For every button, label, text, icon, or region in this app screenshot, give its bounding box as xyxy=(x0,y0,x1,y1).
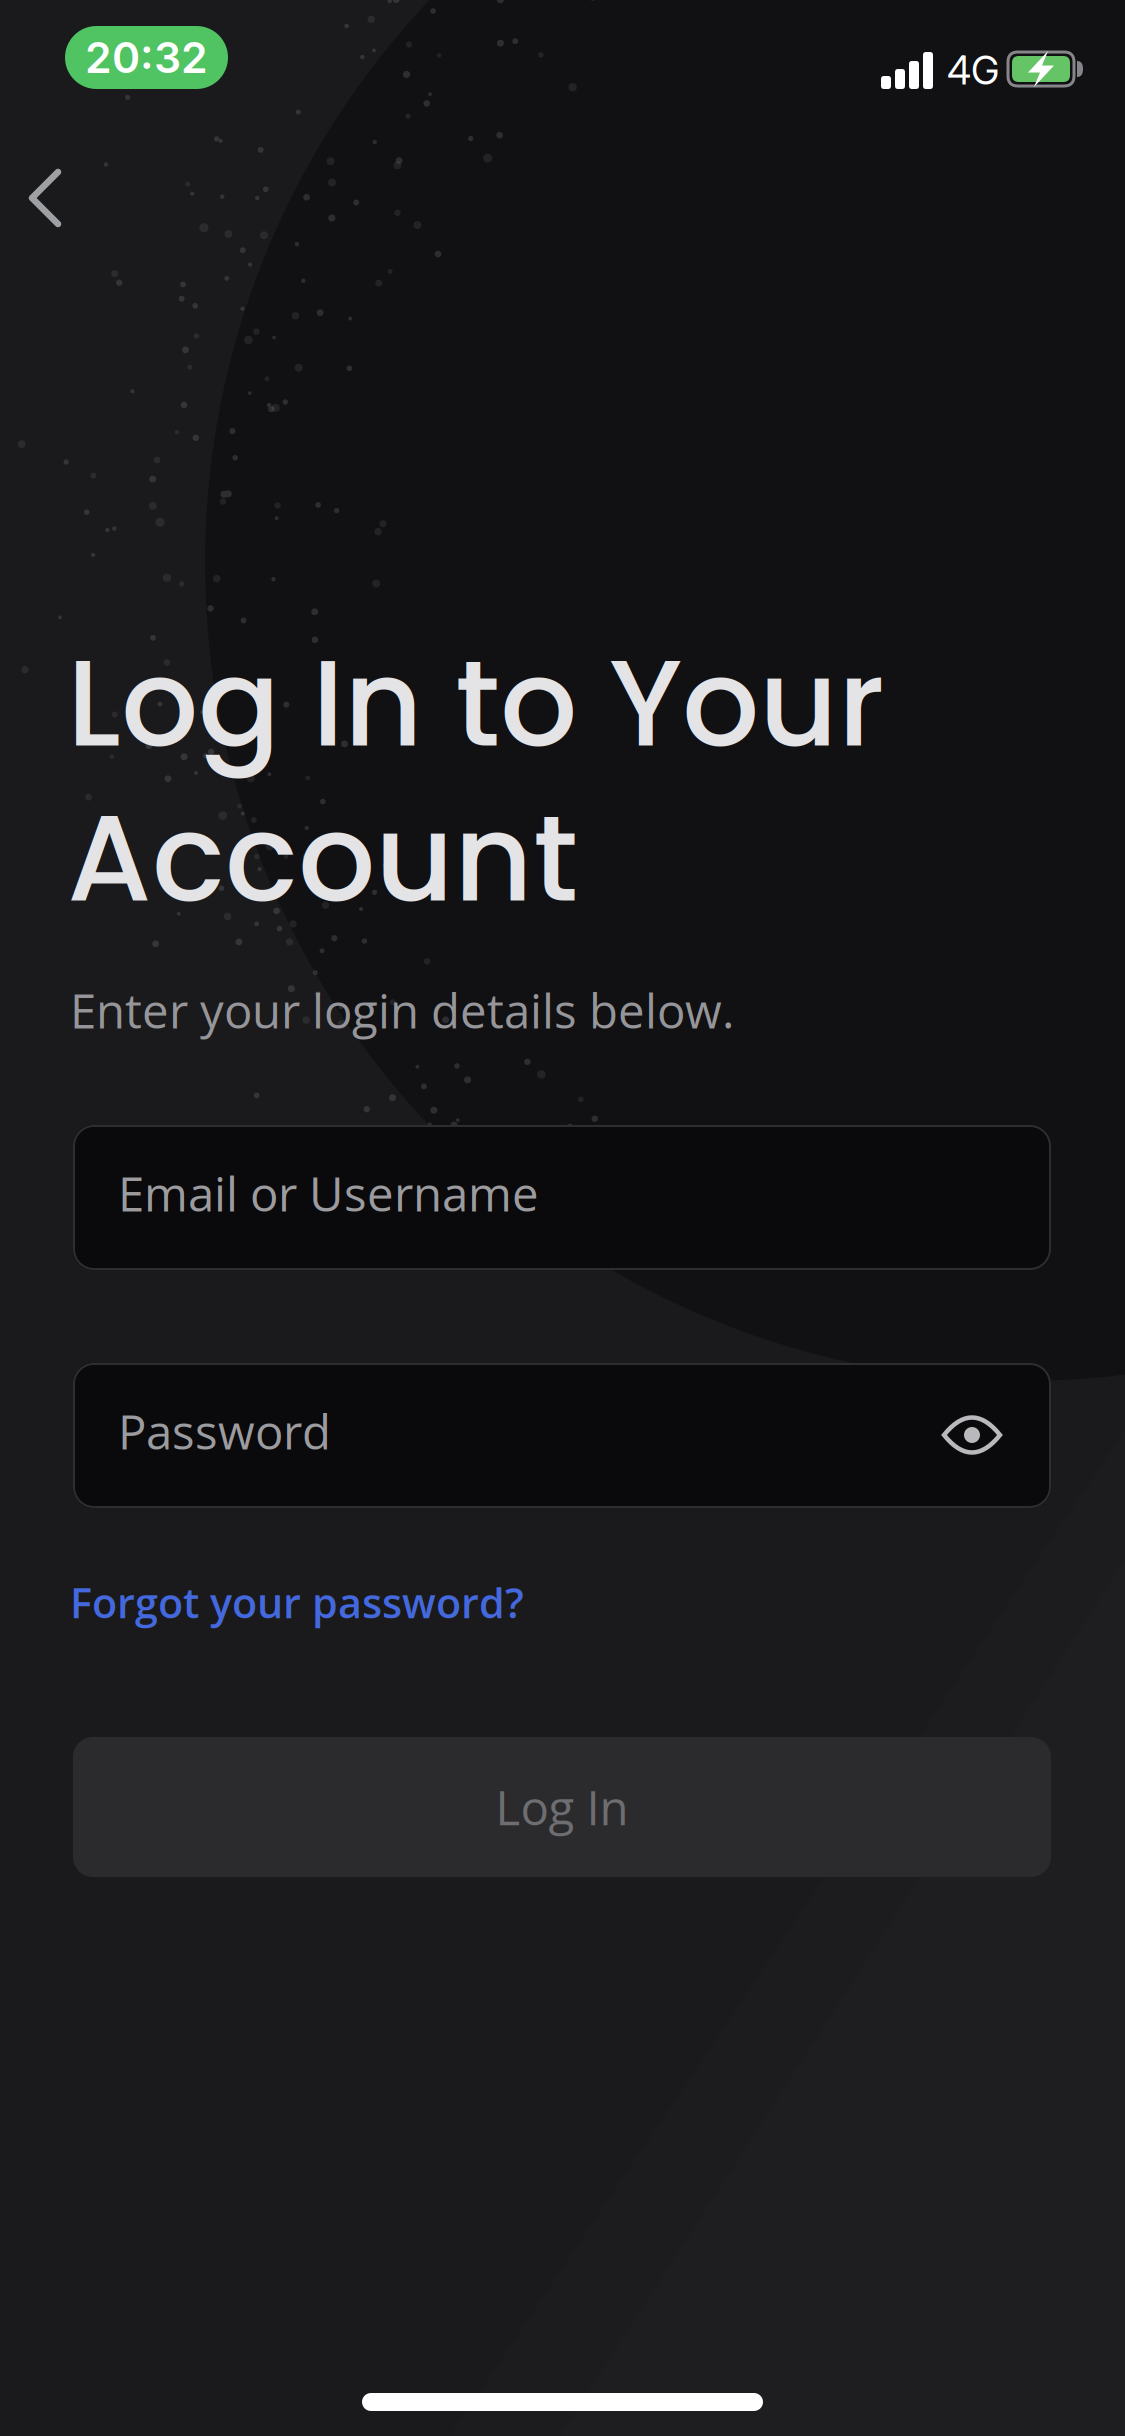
button[interactable]: Log In xyxy=(73,1737,1051,1877)
button[interactable]: 20:32 xyxy=(65,26,228,89)
button[interactable]: Forgot your password? xyxy=(70,1574,524,1630)
staticText: 4G xyxy=(947,47,999,94)
staticText: Log In xyxy=(495,1775,628,1839)
staticText: 20:32 xyxy=(85,32,208,83)
staticText: Account xyxy=(67,773,578,943)
staticText: Enter your login details below. xyxy=(70,978,734,1042)
button[interactable] xyxy=(0,150,90,250)
staticText: Log In to Your xyxy=(67,618,885,788)
button[interactable]: Email or Username xyxy=(73,1125,1051,1270)
staticText: Forgot your password? xyxy=(70,1574,524,1630)
staticText: Password xyxy=(118,1399,331,1463)
staticText: Email or Username xyxy=(118,1161,539,1225)
button[interactable]: Password xyxy=(73,1363,1051,1508)
button[interactable] xyxy=(932,1395,1012,1475)
